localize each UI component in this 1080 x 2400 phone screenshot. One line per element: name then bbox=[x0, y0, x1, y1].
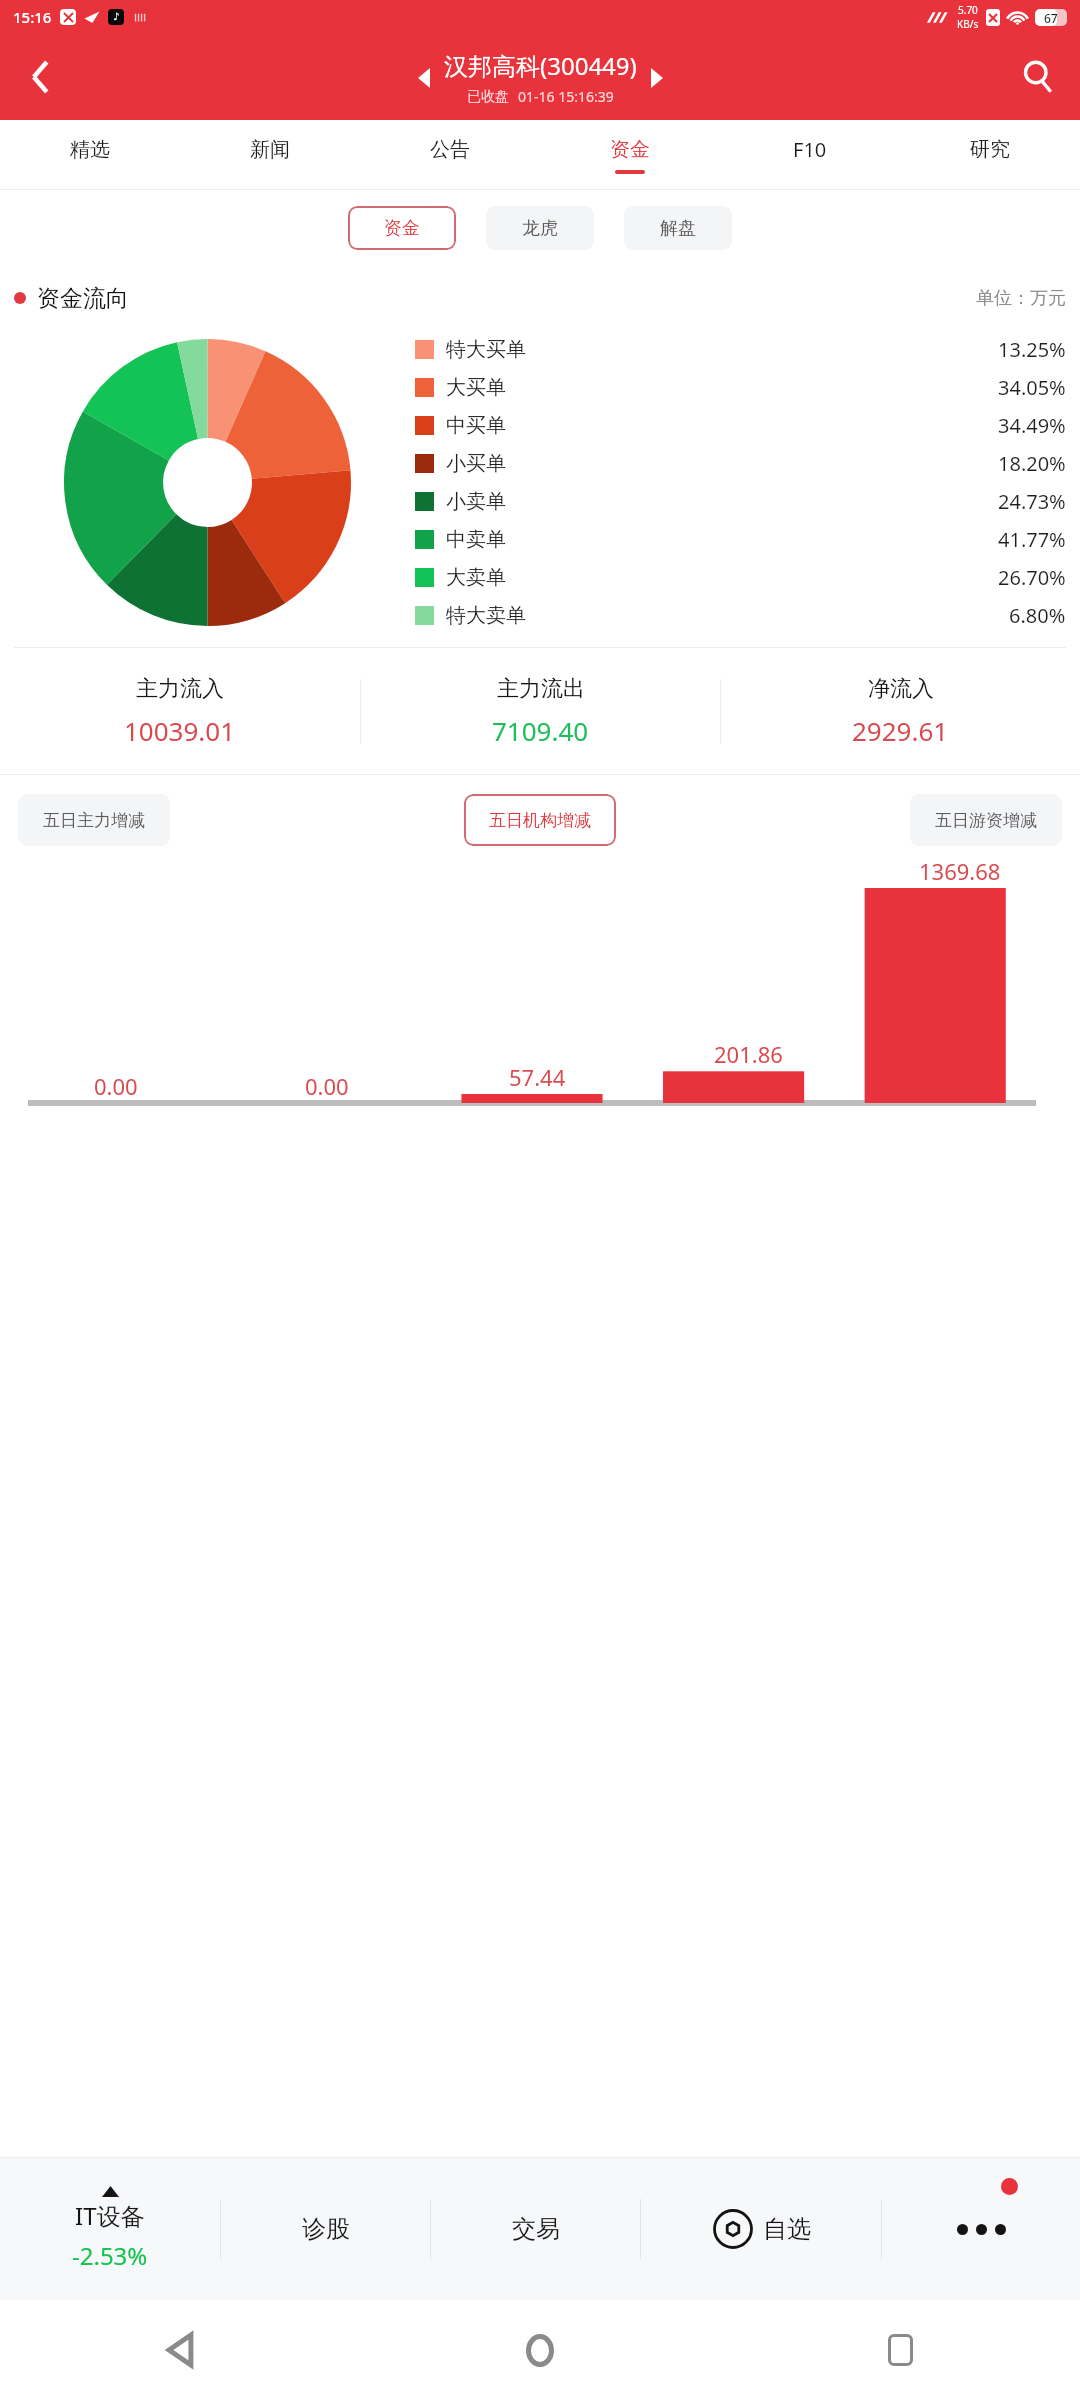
button[interactable]: 五日主力增减 bbox=[18, 794, 170, 846]
staticText: 资金 bbox=[610, 137, 650, 162]
staticText: F10 bbox=[793, 136, 827, 163]
button[interactable]: 精选 bbox=[0, 120, 180, 190]
button[interactable]: 交易 bbox=[431, 2158, 640, 2300]
button[interactable]: More options bbox=[882, 2158, 1080, 2300]
button[interactable]: 五日游资增减 bbox=[910, 794, 1062, 846]
button[interactable]: 净流入 bbox=[721, 648, 1080, 774]
staticText: 中卖单 bbox=[446, 527, 506, 552]
staticText: 资金 bbox=[384, 217, 420, 240]
staticText: 小买单 bbox=[446, 451, 506, 476]
staticText: 大卖单 bbox=[446, 565, 506, 590]
staticText: 0.00 bbox=[305, 1071, 349, 1101]
button[interactable]: 公告 bbox=[360, 120, 540, 190]
staticText: IT设备 bbox=[75, 2199, 145, 2232]
staticText: 特大买单 bbox=[446, 337, 526, 362]
staticText: 主力流入 bbox=[136, 675, 224, 703]
staticText: 龙虎 bbox=[522, 217, 558, 240]
staticText: KB/s bbox=[957, 17, 979, 31]
button[interactable]: 龙虎 bbox=[486, 206, 594, 250]
button[interactable]: Next stock bbox=[637, 58, 677, 98]
staticText: 已收盘 bbox=[467, 88, 509, 106]
staticText: 10039.01 bbox=[124, 713, 236, 748]
button[interactable]: 研究 bbox=[900, 120, 1080, 190]
staticText: 201.86 bbox=[714, 1039, 783, 1069]
button[interactable]: 解盘 bbox=[624, 206, 732, 250]
staticText: 新闻 bbox=[250, 137, 290, 162]
staticText: 7109.40 bbox=[492, 713, 589, 748]
staticText: 18.20% bbox=[998, 450, 1066, 477]
button[interactable]: Previous stock bbox=[404, 58, 444, 98]
button[interactable]: 主力流入 bbox=[0, 648, 360, 774]
staticText: 34.49% bbox=[998, 412, 1066, 439]
staticText: 34.05% bbox=[998, 374, 1066, 401]
staticText: 交易 bbox=[512, 2214, 560, 2244]
button[interactable]: 诊股 bbox=[221, 2158, 430, 2300]
staticText: 57.44 bbox=[509, 1062, 566, 1092]
button[interactable]: IT设备 bbox=[0, 2158, 220, 2300]
staticText: 0.00 bbox=[94, 1071, 138, 1101]
button[interactable]: 五日机构增减 bbox=[464, 794, 616, 846]
button[interactable]: Home bbox=[360, 2300, 720, 2400]
staticText: 41.77% bbox=[998, 526, 1066, 553]
staticText: 24.73% bbox=[998, 488, 1066, 515]
staticText: 单位：万元 bbox=[976, 287, 1066, 310]
staticText: 大买单 bbox=[446, 375, 506, 400]
button[interactable]: 自选 bbox=[641, 2158, 881, 2300]
staticText: 1369.68 bbox=[919, 856, 1001, 886]
button[interactable]: 新闻 bbox=[180, 120, 360, 190]
staticText: 五日机构增减 bbox=[489, 810, 591, 831]
button[interactable]: Search bbox=[996, 34, 1080, 120]
staticText: 5.70 bbox=[958, 3, 978, 17]
button[interactable]: 资金 bbox=[540, 120, 720, 190]
staticText: 15:16 bbox=[13, 7, 52, 27]
staticText: 精选 bbox=[70, 137, 110, 162]
button[interactable]: F10 bbox=[720, 120, 900, 190]
staticText: 特大卖单 bbox=[446, 603, 526, 628]
button[interactable]: Back bbox=[0, 34, 82, 120]
staticText: 资金流向 bbox=[37, 284, 129, 313]
staticText: 主力流出 bbox=[497, 675, 585, 703]
staticText: 13.25% bbox=[998, 336, 1066, 363]
staticText: 2929.61 bbox=[852, 713, 949, 748]
staticText: 小卖单 bbox=[446, 489, 506, 514]
staticText: 汉邦高科(300449) bbox=[444, 49, 637, 82]
button[interactable]: 主力流出 bbox=[361, 648, 720, 774]
button[interactable]: Back bbox=[0, 2300, 360, 2400]
button[interactable]: 资金 bbox=[348, 206, 456, 250]
staticText: 26.70% bbox=[998, 564, 1066, 591]
staticText: -2.53% bbox=[72, 2239, 148, 2272]
staticText: 净流入 bbox=[868, 675, 934, 703]
staticText: 研究 bbox=[970, 137, 1010, 162]
staticText: 五日游资增减 bbox=[935, 810, 1037, 831]
staticText: 公告 bbox=[430, 137, 470, 162]
button[interactable]: Recent apps bbox=[720, 2300, 1080, 2400]
staticText: ♪ bbox=[113, 11, 120, 23]
staticText: 67 bbox=[1044, 10, 1058, 26]
staticText: 6.80% bbox=[1009, 602, 1066, 629]
staticText: 01-16 15:16:39 bbox=[518, 87, 614, 106]
staticText: 五日主力增减 bbox=[43, 810, 145, 831]
staticText: 中买单 bbox=[446, 413, 506, 438]
staticText: 自选 bbox=[763, 2214, 811, 2244]
staticText: 诊股 bbox=[302, 2214, 350, 2244]
staticText: 解盘 bbox=[660, 217, 696, 240]
